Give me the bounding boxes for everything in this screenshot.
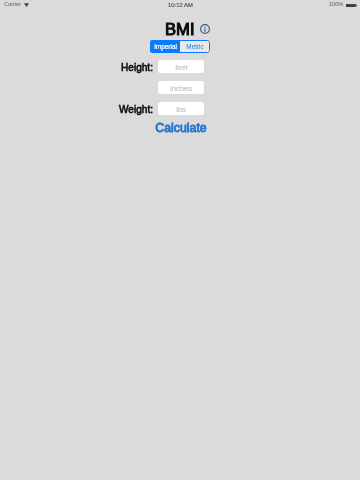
staticText: Height:: [121, 62, 153, 73]
staticText: Height:: [121, 62, 153, 73]
button[interactable]: lbs: [158, 102, 204, 115]
staticText: Calculate: [155, 121, 207, 135]
staticText: Weight:: [119, 104, 154, 115]
button[interactable]: Calculate: [150, 119, 212, 137]
staticText: Metric: [186, 43, 204, 50]
staticText: Carrier: [4, 1, 22, 7]
button[interactable]: About BMI: [200, 24, 210, 34]
button[interactable]: Imperial: [150, 40, 180, 53]
staticText: Weight:: [119, 104, 154, 115]
staticText: lbs: [176, 105, 186, 113]
staticText: Calculate: [155, 121, 207, 135]
button[interactable]: inches: [158, 81, 204, 94]
staticText: feet: [175, 63, 188, 71]
staticText: inches: [170, 84, 192, 92]
button[interactable]: feet: [158, 60, 204, 73]
staticText: 10:12 AM: [168, 2, 193, 9]
staticText: BMI: [165, 20, 195, 39]
staticText: Imperial: [154, 43, 177, 50]
staticText: BMI: [165, 20, 195, 39]
staticText: 100%: [329, 1, 344, 7]
button[interactable]: Metric: [180, 40, 210, 53]
